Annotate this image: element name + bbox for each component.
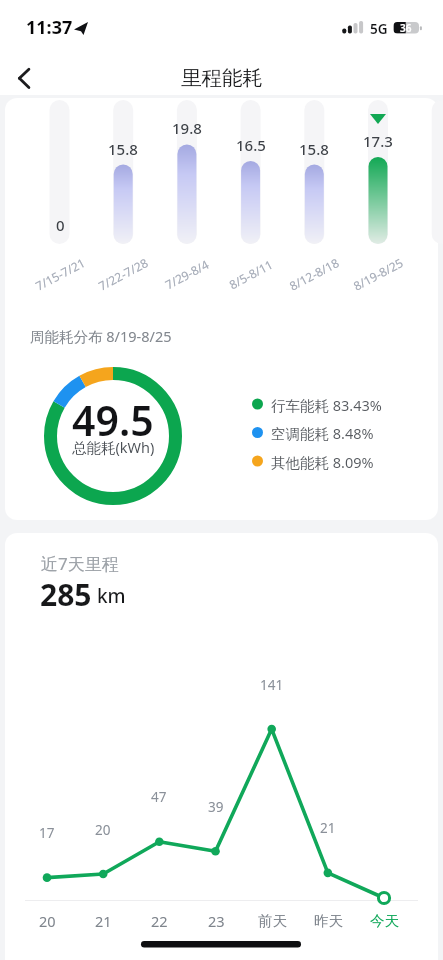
staticText: 285 (40, 574, 92, 615)
staticText: 17.3 (363, 131, 393, 151)
staticText: 总能耗(kWh) (72, 437, 155, 457)
staticText: 8/5-8/11 (226, 256, 276, 292)
staticText: 行车能耗 83.43% (271, 395, 382, 415)
staticText: 7/15-7/21 (32, 254, 88, 294)
staticText: 前天 (258, 912, 287, 930)
staticText: 5G (370, 20, 388, 38)
staticText: 16.5 (236, 135, 266, 155)
staticText: 21 (320, 819, 336, 837)
staticText: 昨天 (314, 912, 343, 930)
staticText: 今天 (370, 912, 399, 930)
staticText: 周能耗分布 8/19-8/25 (30, 326, 172, 346)
staticText: 近7天里程 (41, 552, 119, 575)
staticText: 17 (39, 824, 55, 842)
staticText: 8/12-8/18 (286, 254, 342, 294)
staticText: 0 (56, 215, 65, 235)
staticText: 22 (151, 911, 168, 931)
button[interactable] (8, 58, 44, 92)
staticText: 19.8 (172, 118, 202, 138)
staticText: 49.5 (72, 392, 154, 448)
staticText: 7/29-8/4 (162, 256, 212, 292)
staticText: 其他能耗 8.09% (271, 452, 374, 472)
staticText: 20 (95, 821, 111, 839)
staticText: 141 (260, 676, 284, 694)
staticText: km (97, 583, 126, 609)
staticText: 36 (400, 21, 412, 35)
staticText: 23 (208, 911, 225, 931)
staticText: 7/22-7/28 (95, 254, 151, 294)
staticText: 21 (95, 911, 112, 931)
staticText: 里程能耗 (181, 65, 263, 91)
staticText: 空调能耗 8.48% (271, 423, 374, 443)
staticText: 15.8 (299, 139, 329, 159)
staticText: 11:37 (26, 15, 73, 40)
staticText: 20 (39, 911, 56, 931)
staticText: 15.8 (108, 139, 138, 159)
staticText: 8/19-8/25 (350, 254, 406, 294)
staticText: 47 (151, 788, 167, 806)
staticText: 39 (208, 798, 224, 816)
